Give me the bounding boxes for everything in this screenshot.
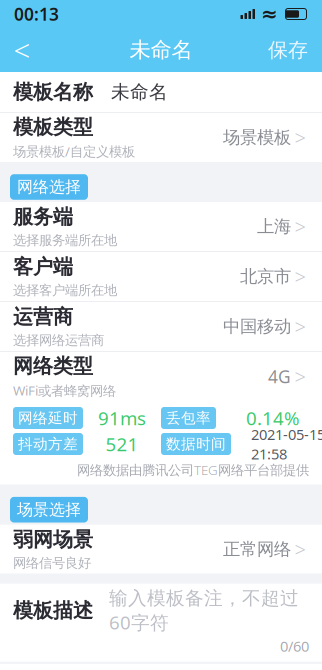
staticText: WiFi或者蜂窝网络 (13, 381, 116, 399)
staticText: 丢包率 (166, 409, 211, 427)
staticText: 场景选择 (17, 500, 81, 520)
staticText: > (294, 124, 305, 151)
staticText: ≈ (261, 3, 278, 25)
button[interactable]: 弱网场景 (0, 525, 322, 574)
button[interactable]: 网络类型 (0, 352, 322, 401)
staticText: > (294, 313, 305, 340)
staticText: 弱网场景 (13, 527, 93, 552)
staticText: 网络数据由腾讯公司TEG网络平台部提供 (77, 461, 309, 479)
staticText: 客户端 (13, 254, 73, 279)
button[interactable]: 输入模板备注，不超过60字符 (93, 594, 299, 628)
staticText: 输入模板备注，不超过60字符 (109, 587, 299, 634)
staticText: 选择网络运营商 (13, 332, 104, 348)
staticText: 选择服务端所在地 (13, 232, 117, 248)
staticText: 上海 (257, 216, 291, 237)
staticText: > (294, 536, 305, 562)
staticText: 数据时间 (166, 435, 226, 453)
staticText: 抖动方差 (18, 435, 78, 453)
staticText: 未命名 (129, 37, 192, 63)
staticText: 网络类型 (13, 354, 93, 378)
staticText: 服务端 (13, 204, 73, 229)
staticText: < (13, 30, 30, 69)
staticText: > (294, 263, 305, 290)
staticText: 网络选择 (17, 177, 81, 197)
button[interactable]: Back (0, 28, 44, 72)
button[interactable]: 运营商 (0, 302, 322, 351)
staticText: > (294, 213, 305, 240)
staticText: 0/60 (280, 636, 309, 656)
staticText: 运营商 (13, 304, 73, 329)
staticText: 模板描述 (13, 598, 93, 623)
staticText: 模板名称 (13, 80, 93, 104)
staticText: 2021-05-15 21:58 (251, 424, 322, 463)
button[interactable]: 模板类型 (0, 113, 322, 162)
staticText: 91ms (98, 406, 146, 430)
staticText: 网络信号良好 (13, 555, 91, 571)
staticText: 未命名 (111, 80, 168, 103)
staticText: 保存 (268, 38, 308, 62)
staticText: > (294, 363, 305, 390)
staticText: 选择客户端所在地 (13, 282, 117, 298)
staticText: 4G (268, 365, 291, 388)
staticText: 北京市 (240, 266, 291, 287)
button[interactable]: 服务端 (0, 202, 322, 251)
staticText: 正常网络 (223, 539, 291, 560)
staticText: 网络延时 (18, 409, 78, 427)
staticText: 场景模板 (223, 127, 291, 148)
button[interactable]: 客户端 (0, 252, 322, 301)
staticText: 0.14% (246, 406, 300, 430)
staticText: 中国移动 (223, 316, 291, 337)
staticText: 00:13 (14, 2, 59, 25)
button[interactable]: 保存 (254, 28, 322, 72)
staticText: 模板类型 (13, 115, 93, 139)
staticText: 场景模板/自定义模板 (13, 142, 135, 160)
staticText: 521 (105, 432, 138, 456)
